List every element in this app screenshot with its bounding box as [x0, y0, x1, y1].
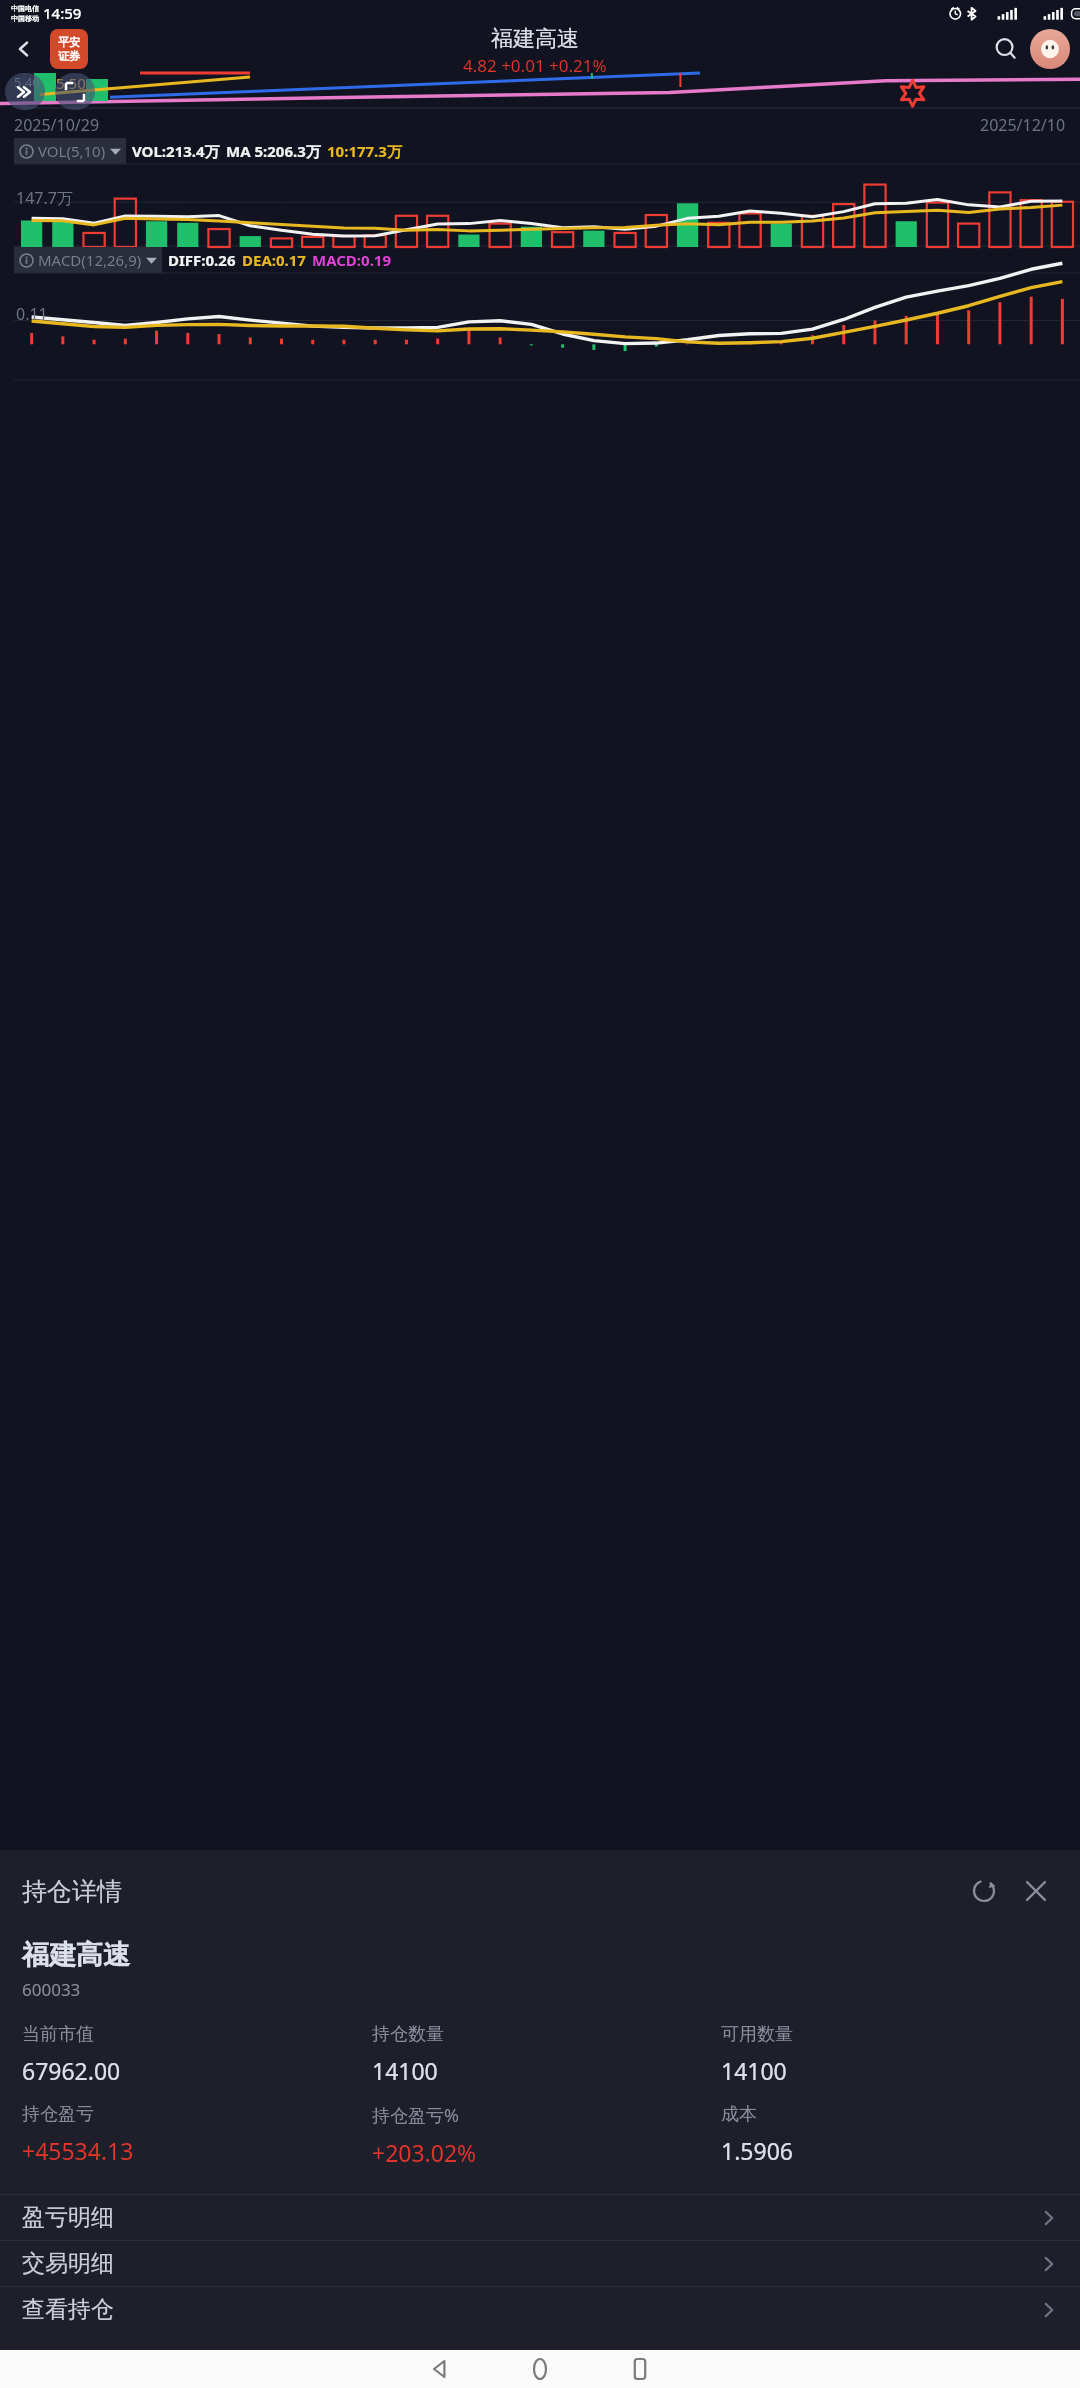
staticText: MACD(12,26,9): [38, 250, 142, 270]
button[interactable]: 盈亏明细: [0, 2195, 1080, 2240]
staticText: 持仓数量: [372, 2023, 444, 2046]
button[interactable]: Home: [512, 2350, 568, 2388]
staticText: 0.11: [16, 303, 48, 325]
staticText: MA 5:206.3万: [226, 141, 321, 161]
staticText: 10:177.3万: [327, 141, 402, 161]
button[interactable]: Back: [412, 2350, 468, 2388]
button[interactable]: Profile: [1030, 29, 1070, 69]
button[interactable]: 交易明细: [0, 2241, 1080, 2286]
staticText: VOL:213.4万: [132, 141, 220, 161]
button[interactable]: Refresh: [962, 1869, 1006, 1913]
staticText: 14100: [372, 2055, 438, 2086]
staticText: 交易明细: [22, 2249, 114, 2278]
staticText: DIFF:0.26: [168, 250, 236, 270]
staticText: 5.40: [14, 73, 40, 91]
button[interactable]: Recents: [612, 2350, 668, 2388]
staticText: 2025/10/29: [14, 114, 100, 136]
button[interactable]: VOL(5,10): [19, 138, 121, 164]
button[interactable]: Back: [0, 25, 48, 73]
staticText: DEA:0.17: [242, 250, 306, 270]
button[interactable]: Expand: [5, 73, 45, 110]
button[interactable]: Crosshair: [55, 73, 95, 110]
staticText: 持仓盈亏: [22, 2103, 94, 2126]
staticText: 147.7万: [16, 187, 73, 209]
button[interactable]: 查看持仓: [0, 2287, 1080, 2332]
staticText: 成本: [721, 2103, 757, 2126]
staticText: 1.5906: [721, 2135, 793, 2166]
staticText: 14:59: [43, 3, 82, 23]
staticText: 当前市值: [22, 2023, 94, 2046]
staticText: 中国移动: [11, 14, 39, 23]
staticText: 证券: [58, 49, 80, 63]
staticText: 可用数量: [721, 2023, 793, 2046]
staticText: 查看持仓: [22, 2295, 114, 2324]
button[interactable]: 平安证券: [50, 29, 88, 69]
staticText: 福建高速: [22, 1938, 130, 1972]
staticText: 600033: [22, 1978, 81, 2001]
staticText: 中国电信: [11, 4, 39, 13]
button[interactable]: Close: [1014, 1869, 1058, 1913]
button[interactable]: MACD(12,26,9): [19, 247, 157, 273]
staticText: +45534.13: [22, 2135, 134, 2166]
staticText: 福建高速: [491, 25, 579, 53]
staticText: +203.02%: [372, 2137, 477, 2168]
staticText: MACD:0.19: [312, 250, 392, 270]
staticText: 2025/12/10: [980, 114, 1066, 136]
staticText: 持仓详情: [22, 1876, 122, 1907]
staticText: 4.82 +0.01 +0.21%: [463, 54, 607, 73]
button[interactable]: Search: [982, 25, 1030, 73]
staticText: VOL(5,10): [38, 141, 106, 161]
staticText: 67962.00: [22, 2055, 121, 2086]
staticText: 平安: [58, 35, 80, 49]
staticText: 5.50: [56, 73, 86, 93]
staticText: 14100: [721, 2055, 787, 2086]
staticText: 盈亏明细: [22, 2203, 114, 2232]
staticText: 持仓盈亏%: [372, 2103, 459, 2128]
